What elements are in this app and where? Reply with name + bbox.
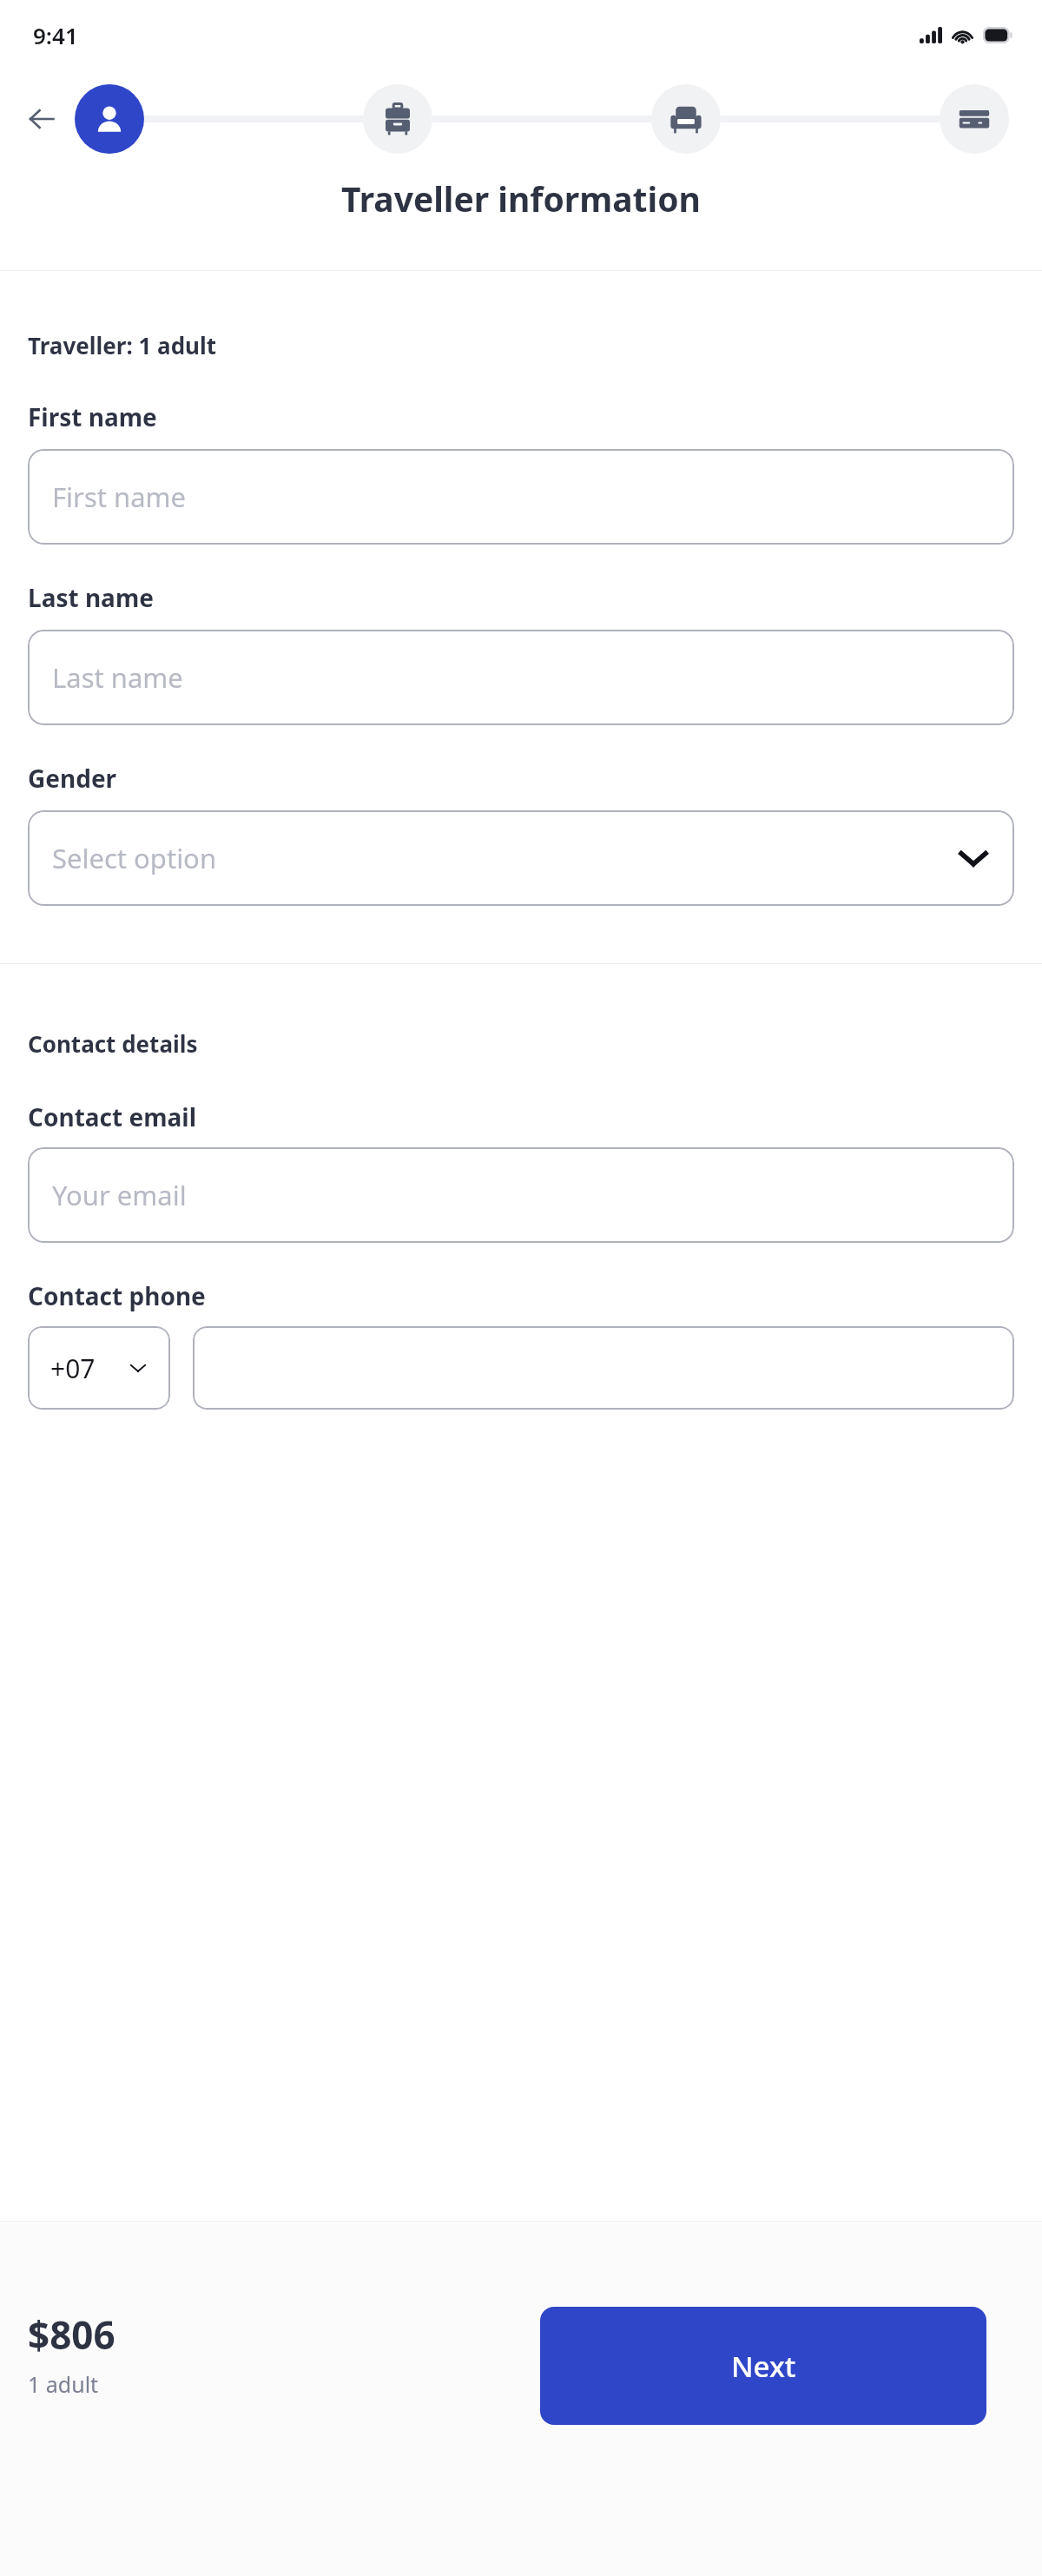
button[interactable]: Next [540, 2307, 986, 2425]
staticText: Last name [28, 581, 154, 614]
staticText: Your email [52, 1177, 187, 1213]
button[interactable]: Payment [940, 84, 1009, 154]
button[interactable]: First name [28, 449, 1014, 545]
staticText: 1 adult [28, 2369, 99, 2399]
button[interactable]: Back [17, 95, 66, 143]
staticText: Select option [52, 840, 217, 876]
staticText: Traveller: 1 adult [28, 330, 217, 360]
button[interactable]: Seat [651, 84, 721, 154]
staticText: Last name [52, 659, 183, 696]
button[interactable]: Baggage [363, 84, 432, 154]
staticText: Traveller information [0, 175, 1042, 221]
staticText: Contact phone [28, 1279, 206, 1312]
button[interactable]: Last name [28, 630, 1014, 725]
staticText: Contact email [28, 1100, 196, 1133]
staticText: +07 [50, 1351, 96, 1386]
button[interactable]: +07 [28, 1326, 170, 1410]
button[interactable]: Your email [28, 1147, 1014, 1243]
staticText: First name [28, 400, 157, 433]
button[interactable]: Select option [28, 810, 1014, 906]
staticText: Contact details [28, 1028, 198, 1059]
staticText: 9:41 [33, 20, 78, 50]
staticText: Gender [28, 762, 117, 795]
staticText: Next [731, 2347, 796, 2386]
staticText: $806 [28, 2308, 115, 2361]
button[interactable]: Traveller [75, 84, 144, 154]
button[interactable] [193, 1326, 1014, 1410]
staticText: First name [52, 479, 187, 515]
